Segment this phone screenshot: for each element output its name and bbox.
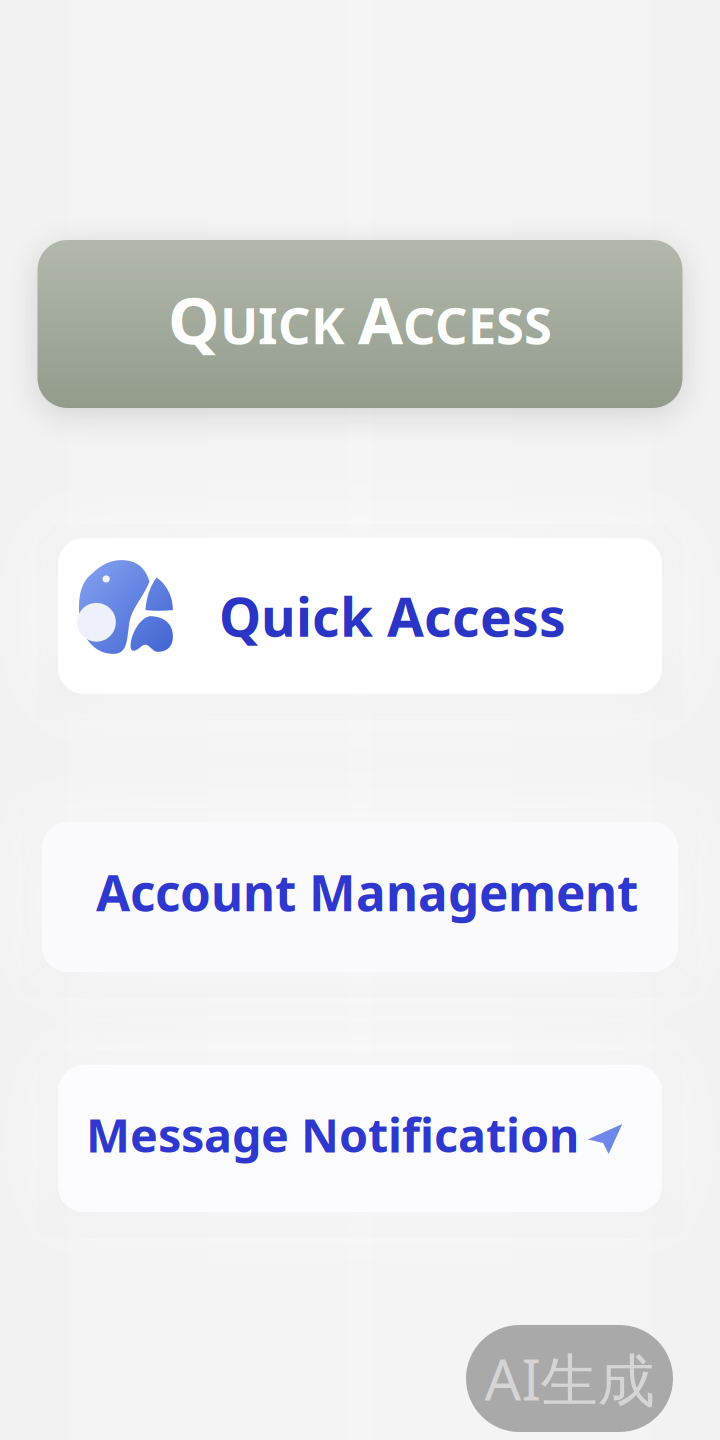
button[interactable]: Account Management [42,822,678,972]
staticText: Q [168,276,220,362]
staticText: Account Management [96,859,638,925]
staticText: Quick Access [219,581,566,651]
staticText: Message Notification [86,1103,579,1165]
staticText: UICK [220,291,345,358]
button[interactable]: Q [37,240,682,408]
button[interactable]: Quick Access [58,538,662,694]
button[interactable]: Message Notification [58,1065,662,1212]
staticText: A [358,276,403,362]
staticText [345,291,358,358]
staticText: CCESS [403,291,552,358]
staticText: AI生成 [484,1340,654,1417]
